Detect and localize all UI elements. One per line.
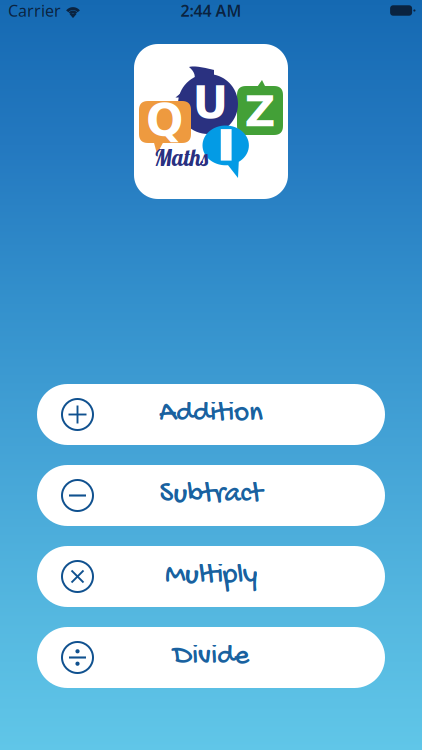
staticText: Carrier [8,0,61,21]
staticText: Multiply [165,559,257,594]
button[interactable]: Multiply [37,546,385,607]
staticText: Z [244,87,275,136]
staticText: Q [146,95,183,146]
staticText: Addition [159,397,263,432]
staticText: Subtract [159,478,262,513]
staticText: Divide [173,640,249,675]
button[interactable]: Addition [37,384,385,445]
button[interactable]: Subtract [37,465,385,526]
staticText: U [192,77,228,129]
staticText: 2:44 AM [180,0,241,21]
button[interactable]: Divide [37,627,385,688]
staticText: Maths [154,143,208,172]
